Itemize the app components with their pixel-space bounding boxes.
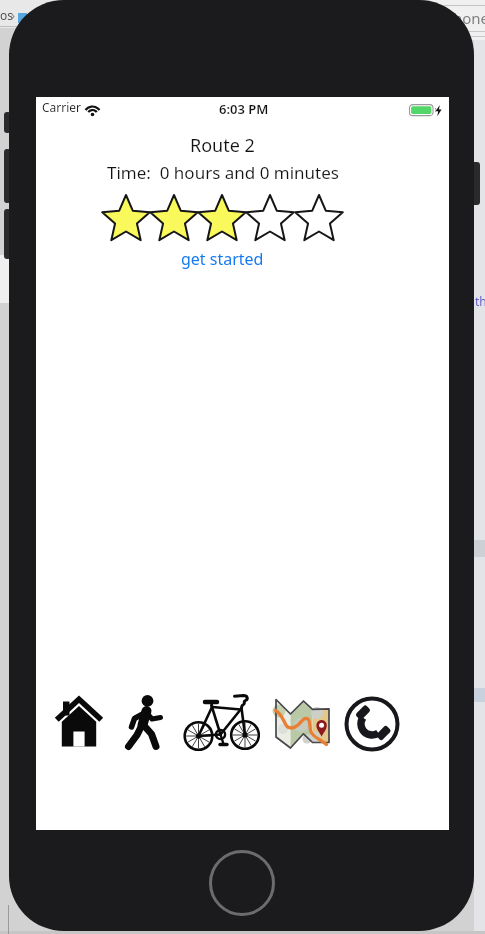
staticText: hone xyxy=(453,8,485,28)
staticText: Time: 0 hours and 0 minutes xyxy=(107,161,339,184)
button[interactable] xyxy=(344,696,400,752)
staticText: th xyxy=(475,293,485,309)
button[interactable] xyxy=(274,694,332,748)
staticText: Carrier xyxy=(42,99,82,115)
button[interactable]: get started xyxy=(181,248,264,270)
button[interactable] xyxy=(244,194,296,246)
button[interactable] xyxy=(100,194,152,246)
staticText: 6:03 PM xyxy=(219,100,269,118)
staticText: get started xyxy=(181,248,264,270)
button[interactable] xyxy=(148,194,200,246)
button[interactable] xyxy=(196,194,248,246)
staticText: › xyxy=(11,6,16,24)
button[interactable] xyxy=(293,194,345,246)
button[interactable] xyxy=(125,694,165,752)
button[interactable] xyxy=(54,695,104,747)
staticText: os xyxy=(0,7,14,23)
button[interactable] xyxy=(184,694,260,752)
staticText: Route 2 xyxy=(190,133,255,158)
